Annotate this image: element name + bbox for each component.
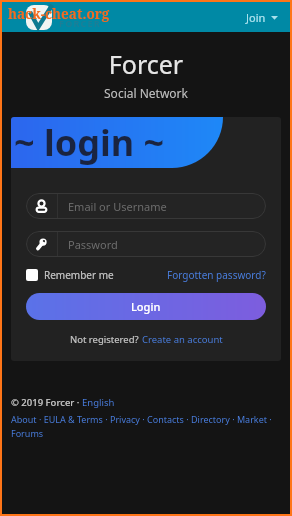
button[interactable]: Create an account — [142, 333, 223, 346]
staticText: Social Network — [2, 85, 290, 101]
button[interactable]: Password — [26, 231, 266, 257]
staticText: About · EULA & Terms · Privacy · Contact… — [11, 413, 281, 439]
staticText: Login — [131, 299, 161, 314]
button[interactable]: Join — [246, 10, 278, 25]
staticText: Email or Username — [68, 199, 167, 214]
button[interactable]: Forgotten password? — [167, 268, 266, 282]
staticText: Remember me — [44, 268, 114, 282]
staticText: hack-cheat.org — [8, 5, 110, 23]
staticText: FORCER — [59, 17, 101, 29]
staticText: Join — [246, 10, 266, 25]
staticText: ~ login ~ — [14, 118, 165, 167]
staticText: Password — [68, 237, 118, 252]
staticText: Forcer — [2, 47, 290, 81]
staticText: Not registered? — [70, 333, 142, 346]
staticText: © 2019 Forcer · — [11, 396, 82, 409]
button[interactable]: Email or Username — [26, 193, 266, 219]
button[interactable]: Login — [26, 293, 266, 320]
button[interactable]: Remember me — [26, 268, 114, 282]
button[interactable]: English — [82, 396, 115, 409]
